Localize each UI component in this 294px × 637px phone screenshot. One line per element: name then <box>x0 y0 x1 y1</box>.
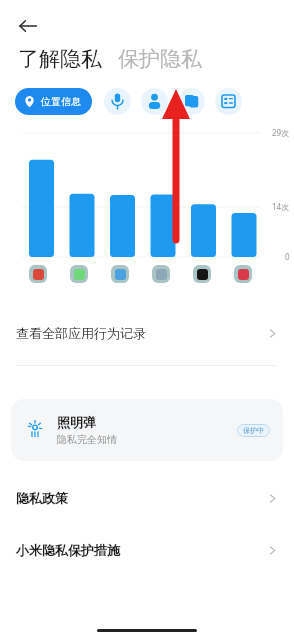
button[interactable]: 小米隐私保护措施 <box>0 535 294 565</box>
button[interactable]: App 0 <box>29 265 47 283</box>
button[interactable]: Back <box>10 8 46 44</box>
staticText: 小米隐私保护措施 <box>16 542 120 558</box>
button[interactable]: 查看全部应用行为记录 <box>0 316 294 350</box>
staticText: 29次 <box>272 127 290 138</box>
staticText: 照明弹 <box>57 414 96 430</box>
button[interactable]: App 4 <box>193 265 211 283</box>
button[interactable]: 隐私政策 <box>0 483 294 513</box>
button[interactable]: 保护隐私 <box>118 46 202 72</box>
button[interactable]: App 1 <box>70 265 88 283</box>
button[interactable]: 照明弹 <box>11 399 283 461</box>
staticText: 查看全部应用行为记录 <box>16 325 146 341</box>
button[interactable]: Contacts <box>141 88 168 115</box>
staticText: 0 <box>285 251 290 262</box>
button[interactable]: Microphone <box>104 88 131 115</box>
staticText: 隐私政策 <box>16 490 68 506</box>
button[interactable]: Records <box>215 88 242 115</box>
button[interactable]: Files <box>178 88 205 115</box>
button[interactable]: App 2 <box>111 265 129 283</box>
staticText: 保护隐私 <box>118 46 202 72</box>
staticText: 14次 <box>272 201 290 212</box>
button[interactable]: 位置信息 <box>15 88 92 115</box>
staticText: 位置信息 <box>41 95 81 108</box>
button[interactable]: App 3 <box>152 265 170 283</box>
button[interactable]: 了解隐私 <box>18 46 104 72</box>
button[interactable]: App 5 <box>234 265 252 283</box>
staticText: 保护中 <box>243 426 264 435</box>
staticText: 隐私完全知情 <box>57 433 117 446</box>
staticText: 了解隐私 <box>18 46 102 72</box>
